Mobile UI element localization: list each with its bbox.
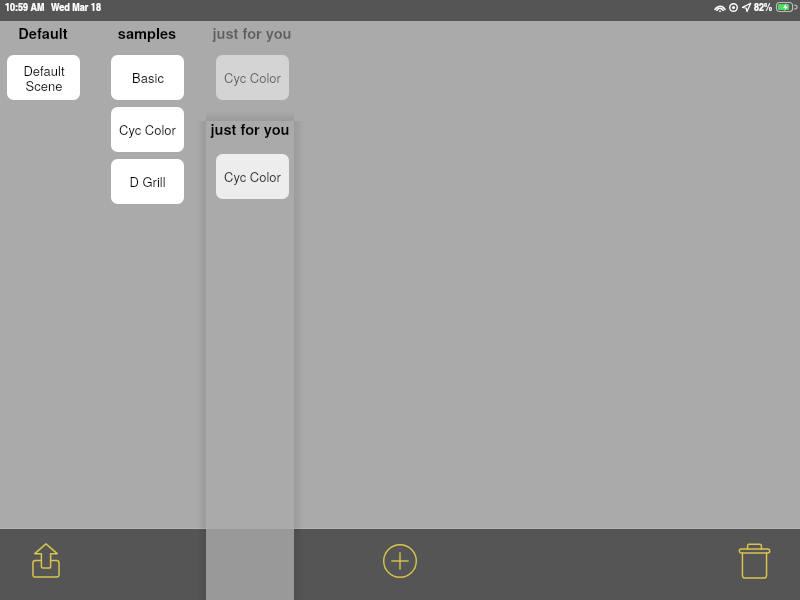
staticText: Cyc Color xyxy=(119,120,176,139)
staticText: Wed Mar 18 xyxy=(51,0,101,15)
button[interactable]: D Grill xyxy=(111,159,184,204)
button[interactable]: Cyc Color xyxy=(216,154,289,199)
button[interactable]: just for you xyxy=(206,121,294,600)
button[interactable]: Cyc Color xyxy=(216,55,289,100)
staticText: Default Scene xyxy=(23,61,65,95)
staticText: just for you xyxy=(206,119,294,140)
button[interactable]: Share xyxy=(0,529,92,592)
button[interactable]: Delete xyxy=(708,529,800,592)
staticText: Cyc Color xyxy=(224,167,281,186)
button[interactable]: Basic xyxy=(111,55,184,100)
staticText: Basic xyxy=(132,68,164,87)
staticText: Default xyxy=(0,23,95,44)
staticText: D Grill xyxy=(129,172,166,191)
staticText: just for you xyxy=(200,23,304,44)
staticText: samples xyxy=(95,23,199,44)
button[interactable]: Default Scene xyxy=(7,55,80,100)
button[interactable]: Cyc Color xyxy=(111,107,184,152)
staticText: 10:59 AM xyxy=(5,0,45,15)
button[interactable]: Add xyxy=(364,529,435,592)
staticText: Cyc Color xyxy=(224,68,281,87)
staticText: 82% xyxy=(754,0,773,15)
